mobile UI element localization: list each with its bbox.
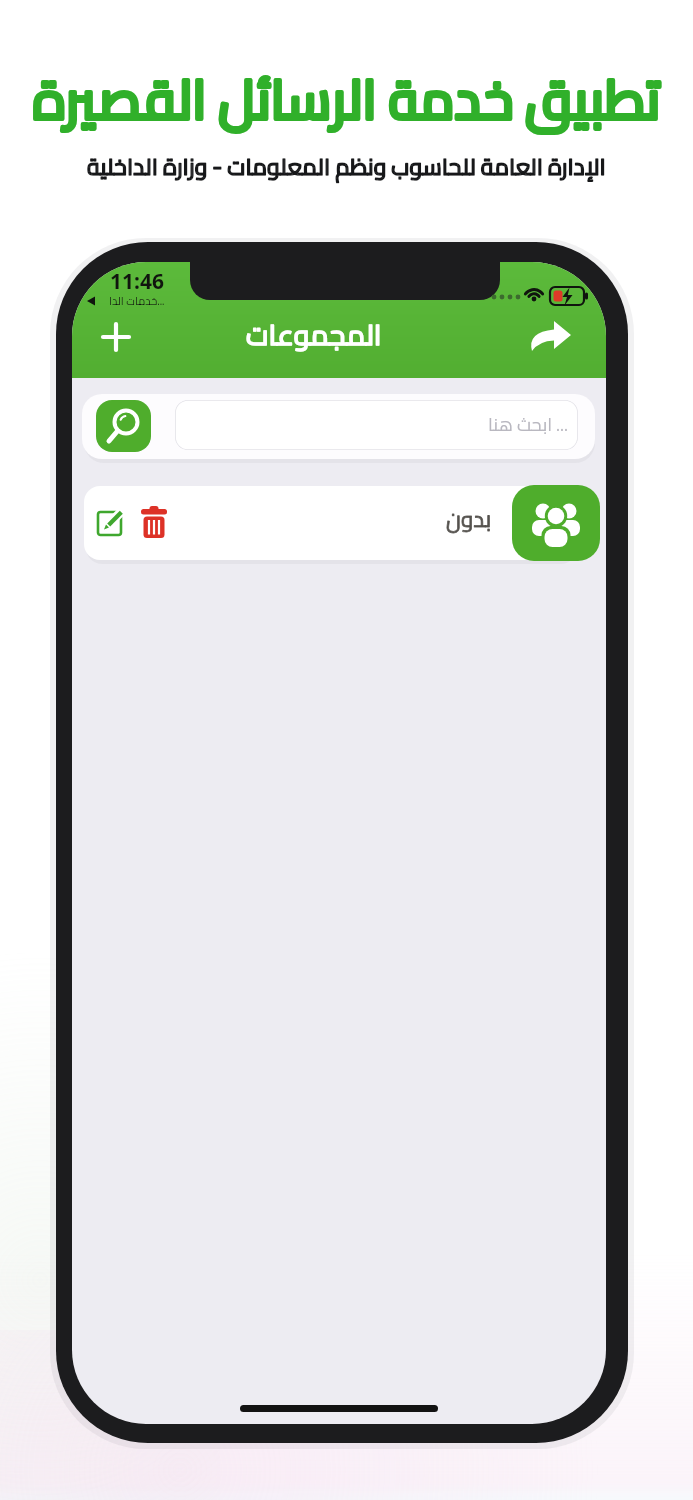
staticText: خدمات الدا...	[109, 291, 165, 309]
button[interactable]	[512, 485, 600, 561]
staticText: الإدارة العامة للحاسوب ونظم المعلومات - …	[87, 145, 606, 188]
staticText: بدون	[446, 498, 492, 540]
button[interactable]	[84, 486, 577, 560]
button[interactable]	[96, 400, 151, 452]
button[interactable]: ابحث هنا ...	[175, 400, 578, 450]
staticText: ابحث هنا ...	[488, 408, 568, 442]
button[interactable]	[140, 505, 168, 539]
staticText: بدون	[446, 498, 492, 540]
button[interactable]	[96, 505, 128, 537]
staticText: 11:46	[110, 267, 164, 293]
staticText: المجموعات	[246, 308, 382, 361]
staticText: المجموعات	[246, 308, 382, 361]
staticText: الإدارة العامة للحاسوب ونظم المعلومات - …	[87, 145, 606, 188]
button[interactable]	[97, 318, 135, 356]
staticText: تطبيق خدمة الرسائل القصيرة	[33, 49, 661, 150]
button[interactable]	[522, 318, 576, 354]
staticText: تطبيق خدمة الرسائل القصيرة	[33, 49, 661, 150]
